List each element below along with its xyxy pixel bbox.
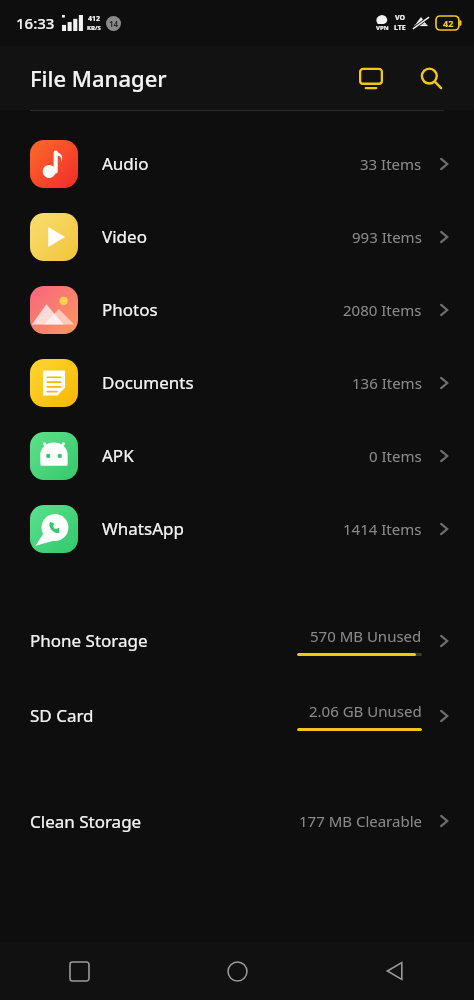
button[interactable]: Recent apps [0,942,158,1000]
staticText: Audio [102,152,149,175]
staticText: Clean Storage [30,810,142,833]
staticText: 14 [109,18,119,29]
staticText: Video [102,225,147,248]
staticText: 33 Items [360,154,422,174]
staticText: 1414 Items [343,519,422,539]
staticText: 570 MB Unused [310,626,422,646]
button[interactable]: Video [0,200,474,273]
button[interactable]: Documents [0,346,474,419]
staticText: 2080 Items [343,300,422,320]
button[interactable]: Photos [0,273,474,346]
staticText: Photos [102,298,158,321]
staticText: 16:33 [16,13,55,33]
button[interactable]: Cast to display [348,55,394,101]
staticText: APK [102,444,134,467]
staticText: VO [395,13,406,23]
button[interactable]: Search [408,55,454,101]
staticText: Phone Storage [30,629,148,652]
button[interactable]: Phone Storage [0,603,474,678]
button[interactable]: Clean Storage [0,791,474,851]
staticText: 412 [88,14,101,24]
staticText: LTE [394,23,406,33]
button[interactable]: Back [316,942,474,1000]
staticText: File Manager [30,63,167,93]
staticText: 42 [443,17,454,29]
staticText: 2.06 GB Unused [309,701,422,721]
staticText: 993 Items [352,227,422,247]
staticText: WhatsApp [102,517,184,540]
staticText: 136 Items [352,373,422,393]
button[interactable]: APK [0,419,474,492]
button[interactable]: Audio [0,127,474,200]
staticText: KB/S [87,24,101,32]
button[interactable]: SD Card [0,678,474,753]
button[interactable]: WhatsApp [0,492,474,565]
staticText: Documents [102,371,194,394]
staticText: 177 MB Clearable [299,811,422,831]
staticText: SD Card [30,704,94,727]
staticText: 0 Items [369,446,422,466]
button[interactable]: Home [158,942,316,1000]
staticText: VPN [376,24,389,32]
